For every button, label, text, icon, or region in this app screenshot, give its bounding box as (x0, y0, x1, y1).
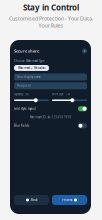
staticText: x (84, 49, 85, 53)
staticText: Watermark ID: ab-1234567890 (29, 115, 71, 119)
button[interactable]: Process (52, 195, 87, 205)
staticText: Secure share (14, 48, 39, 54)
staticText: Your display name (17, 75, 41, 79)
staticText: Customised Protection - Your Data, (9, 15, 93, 22)
button[interactable]: Grid style layout (10, 105, 91, 112)
staticText: Grid style layout (14, 107, 36, 110)
staticText: Your Rules (38, 22, 63, 29)
button[interactable]: Blur fields (10, 122, 91, 129)
staticText: Back (31, 198, 37, 202)
button[interactable]: Close (82, 48, 87, 53)
button[interactable]: Back (14, 195, 49, 205)
staticText: Recipient (17, 84, 31, 87)
staticText: Blur fields (14, 124, 29, 127)
staticText: Stay in Control (23, 2, 79, 13)
staticText: Font size 14 (52, 92, 70, 96)
button[interactable]: Watermark + Metadata (14, 65, 49, 71)
staticText: Process (62, 198, 72, 202)
staticText: Choose Watermark Type (14, 59, 45, 63)
staticText: Watermark + Metadata (18, 66, 45, 70)
staticText: Opacity 30 (14, 92, 29, 96)
